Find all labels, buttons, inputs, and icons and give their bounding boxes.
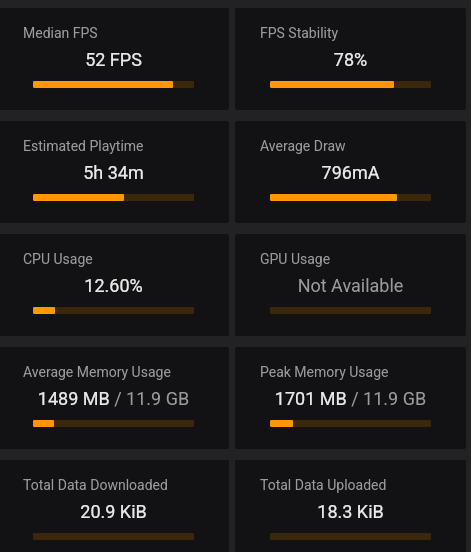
staticText: CPU Usage [23, 251, 93, 267]
staticText: Not Available [235, 275, 466, 296]
staticText: 18.3 KiB [235, 501, 466, 522]
button[interactable]: Total Data Uploaded [235, 460, 466, 552]
staticText: Estimated Playtime [23, 138, 144, 154]
button[interactable]: FPS Stability [235, 8, 466, 110]
staticText: Average Memory Usage [23, 364, 171, 380]
button[interactable]: Median FPS [0, 8, 229, 110]
staticText: FPS Stability [260, 25, 339, 41]
staticText: 52 FPS [0, 49, 229, 70]
button[interactable]: Estimated Playtime [0, 121, 229, 223]
staticText: 78% [235, 49, 466, 70]
staticText: Median FPS [23, 25, 98, 41]
button[interactable]: Average Draw [235, 121, 466, 223]
staticText: GPU Usage [260, 251, 331, 267]
staticText: 20.9 KiB [0, 501, 229, 522]
staticText: 1489 MB / 11.9 GB [0, 388, 229, 409]
button[interactable]: CPU Usage [0, 234, 229, 336]
button[interactable]: GPU Usage [235, 234, 466, 336]
button[interactable]: Average Memory Usage [0, 347, 229, 449]
staticText: 5h 34m [0, 162, 229, 183]
staticText: 12.60% [0, 275, 229, 296]
staticText: Total Data Uploaded [260, 477, 387, 493]
staticText: 1701 MB / 11.9 GB [235, 388, 466, 409]
staticText: 796mA [235, 162, 466, 183]
button[interactable]: Total Data Downloaded [0, 460, 229, 552]
staticText: Total Data Downloaded [23, 477, 168, 493]
button[interactable]: Peak Memory Usage [235, 347, 466, 449]
staticText: Average Draw [260, 138, 346, 154]
staticText: Peak Memory Usage [260, 364, 389, 380]
